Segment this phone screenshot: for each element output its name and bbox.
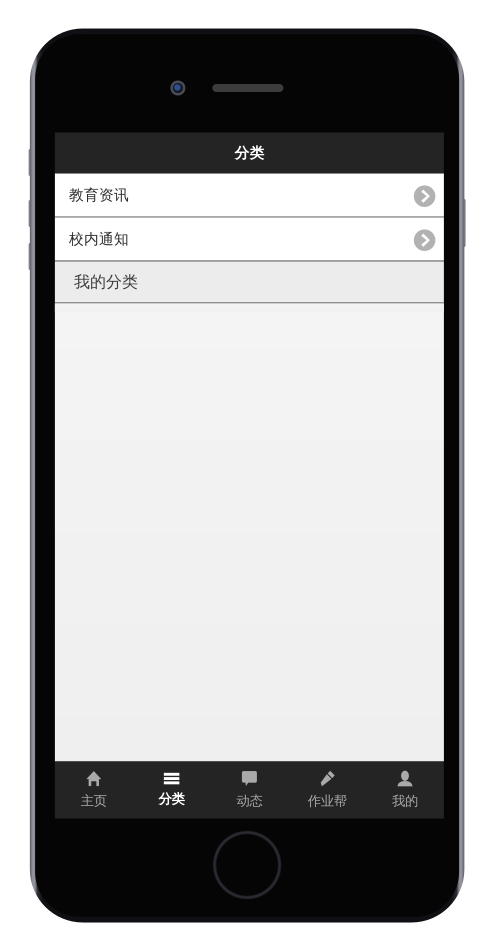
button[interactable]: 主页 <box>55 761 133 818</box>
button[interactable]: 动态 <box>210 761 288 818</box>
button[interactable]: 作业帮 <box>288 761 366 818</box>
button[interactable]: 校内通知 <box>55 217 444 260</box>
staticText: 教育资讯 <box>69 186 129 204</box>
staticText: 校内通知 <box>69 230 129 248</box>
staticText: 分类 <box>234 144 264 162</box>
staticText: 我的分类 <box>74 272 138 292</box>
staticText: 分类 <box>159 791 185 807</box>
button[interactable]: 我的 <box>366 761 444 818</box>
button[interactable]: 分类 <box>133 761 210 818</box>
staticText: 动态 <box>236 793 262 809</box>
staticText: 主页 <box>81 793 107 809</box>
staticText: 我的 <box>392 793 418 809</box>
button[interactable]: 教育资讯 <box>55 173 444 216</box>
staticText: 作业帮 <box>308 793 347 809</box>
